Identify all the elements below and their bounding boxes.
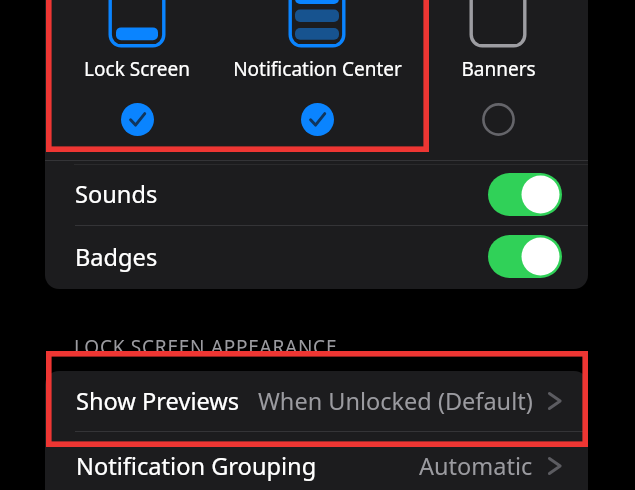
button[interactable]: Notification Grouping [45,434,588,490]
staticText: Notification Center [233,56,402,82]
button[interactable]: Notification Center [227,0,407,140]
button[interactable]: Lock Screen [47,0,227,140]
staticText: Sounds [75,178,158,210]
staticText: Notification Grouping [76,450,317,482]
staticText: Lock Screen [84,56,190,82]
staticText: Banners [461,56,536,82]
staticText: LOCK SCREEN APPEARANCE [74,334,338,360]
button[interactable]: Banners [408,0,588,140]
staticText: When Unlocked (Default) [258,385,533,417]
button[interactable]: Sounds [45,168,588,226]
button[interactable]: Show Previews [45,371,588,433]
staticText: Badges [75,241,158,273]
button[interactable]: Badges [45,227,588,288]
staticText: Automatic [419,450,533,482]
staticText: Show Previews [76,385,240,417]
